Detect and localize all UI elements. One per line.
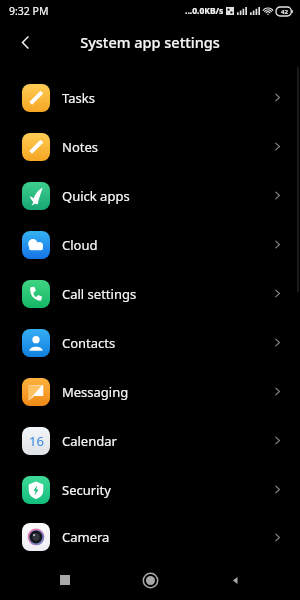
staticText: Security: [62, 481, 111, 499]
button[interactable]: Messaging: [0, 367, 300, 416]
button[interactable]: Home: [130, 560, 170, 600]
button[interactable]: Back: [9, 26, 41, 58]
button[interactable]: Contacts: [0, 318, 300, 367]
staticText: 42: [281, 8, 288, 16]
button[interactable]: Notes: [0, 122, 300, 171]
button[interactable]: Quick apps: [0, 171, 300, 220]
staticText: Calendar: [62, 432, 117, 450]
staticText: Tasks: [62, 89, 95, 107]
staticText: System app settings: [80, 32, 220, 52]
button[interactable]: Security: [0, 465, 300, 514]
staticText: Messaging: [62, 383, 129, 401]
staticText: Quick apps: [62, 187, 130, 205]
button[interactable]: Recents: [45, 560, 85, 600]
staticText: Notes: [62, 138, 98, 156]
button[interactable]: 16: [0, 416, 300, 465]
staticText: 16: [29, 432, 44, 450]
button[interactable]: Tasks: [0, 73, 300, 122]
staticText: 9:32 PM: [9, 4, 49, 18]
button[interactable]: Camera: [0, 514, 300, 560]
staticText: Cloud: [62, 236, 98, 254]
button[interactable]: Cloud: [0, 220, 300, 269]
staticText: Call settings: [62, 285, 137, 303]
staticText: Contacts: [62, 334, 116, 352]
staticText: ...0.0KB/s: [185, 5, 224, 17]
staticText: Camera: [62, 528, 110, 546]
button[interactable]: Back: [215, 560, 255, 600]
button[interactable]: Call settings: [0, 269, 300, 318]
